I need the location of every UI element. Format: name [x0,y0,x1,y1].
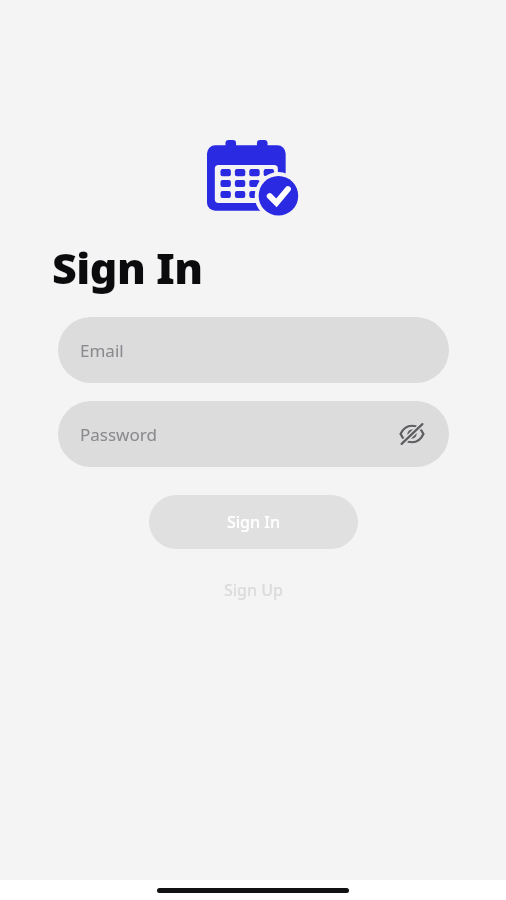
staticText: Sign Up [224,579,283,601]
button[interactable]: Sign Up [202,571,305,609]
button[interactable]: Show password [395,417,429,451]
button[interactable]: Email [58,317,449,383]
staticText: Sign In [227,511,280,533]
button[interactable]: Sign In [149,495,358,549]
button[interactable]: Password [58,401,449,467]
staticText: Password [80,423,395,446]
staticText: Email [80,339,429,362]
staticText: Sign In [52,238,203,297]
